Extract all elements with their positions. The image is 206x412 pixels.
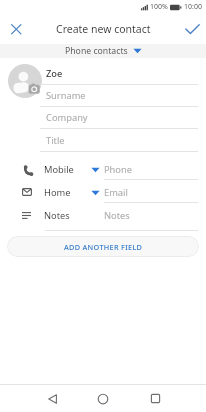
staticText: Company [46, 111, 88, 124]
staticText: Zoe [46, 67, 63, 80]
staticText: Create new contact [56, 22, 151, 36]
button[interactable] [5, 18, 27, 40]
button[interactable]: Zoe [0, 62, 206, 85]
button[interactable]: Home [0, 181, 206, 203]
staticText: Notes [104, 209, 130, 222]
button[interactable]: Title [0, 129, 206, 151]
staticText: Notes [44, 209, 70, 222]
button[interactable]: Phone contacts [0, 44, 206, 58]
staticText: Mobile [44, 163, 74, 176]
staticText: ADD ANOTHER FIELD [64, 242, 143, 252]
button[interactable] [8, 64, 42, 98]
button[interactable] [181, 18, 203, 40]
button[interactable]: ADD ANOTHER FIELD [7, 236, 199, 257]
button[interactable]: Notes [0, 204, 206, 231]
button[interactable] [141, 385, 169, 412]
staticText: Phone contacts [65, 45, 128, 57]
staticText: Email [104, 186, 128, 199]
button[interactable] [89, 385, 117, 412]
staticText: Surname [46, 89, 86, 102]
staticText: 10:00 [184, 2, 202, 12]
button[interactable]: Company [0, 107, 206, 129]
button[interactable]: Surname [0, 85, 206, 107]
button[interactable] [38, 385, 66, 412]
staticText: Phone [104, 163, 132, 176]
staticText: Home [44, 186, 71, 199]
button[interactable]: Mobile [0, 158, 206, 180]
staticText: 100% [150, 2, 168, 12]
staticText: Title [46, 134, 65, 147]
